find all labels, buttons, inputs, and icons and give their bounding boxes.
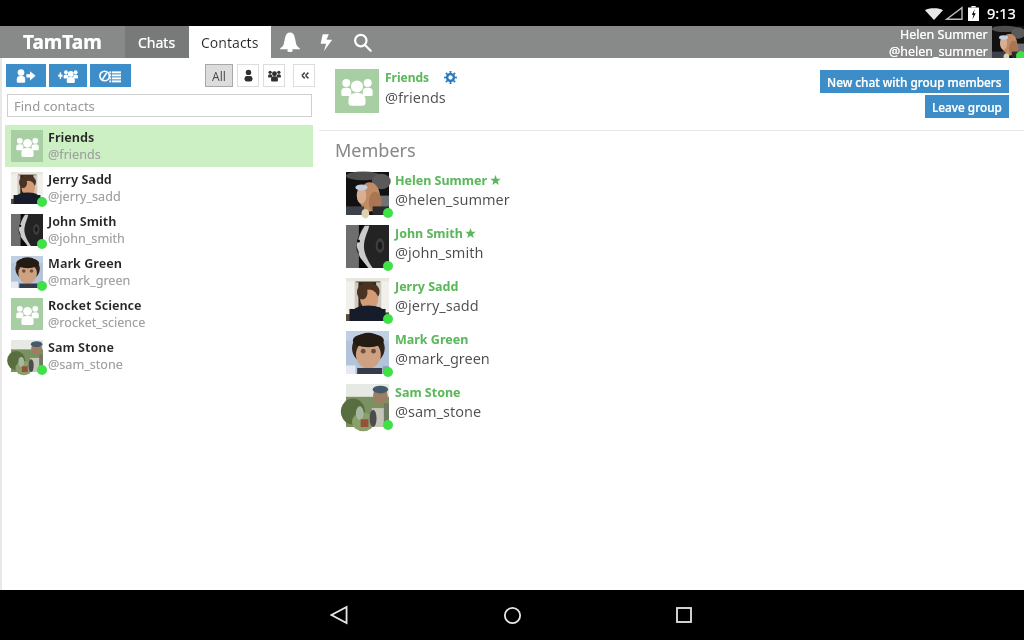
button[interactable]: John Smith [5, 209, 313, 251]
button[interactable]: Jerry Sadd [319, 276, 1024, 329]
button[interactable]: Sam Stone [319, 382, 1024, 435]
button[interactable]: Search [344, 26, 380, 58]
staticText: 9:13 [987, 3, 1016, 23]
staticText: Jerry Sadd [395, 278, 459, 295]
staticText: Sam Stone [395, 384, 461, 401]
button[interactable]: Friends [5, 125, 313, 167]
staticText: @rocket_science [48, 314, 146, 331]
staticText: @john_smith [48, 230, 125, 247]
button[interactable]: Find contacts [7, 94, 312, 117]
button[interactable]: Filter [293, 64, 315, 87]
staticText: Friends [48, 129, 95, 146]
staticText: Mark Green [48, 255, 122, 272]
staticText: Sam Stone [48, 339, 115, 356]
button[interactable]: Mark Green [319, 329, 1024, 382]
button[interactable]: Filter [237, 64, 259, 87]
staticText: Leave group [932, 99, 1002, 115]
staticText: TamTam [23, 29, 102, 55]
button[interactable]: Action [6, 64, 46, 87]
staticText: @helen_summer [889, 43, 988, 58]
button[interactable]: Action [49, 64, 87, 87]
button[interactable]: Mark Green [5, 251, 313, 293]
staticText: Mark Green [395, 331, 469, 348]
staticText: Contacts [201, 33, 259, 52]
button[interactable]: Contacts [189, 26, 271, 58]
button[interactable]: Jerry Sadd [5, 167, 313, 209]
staticText: John Smith [48, 213, 117, 230]
staticText: Helen Summer [900, 26, 988, 43]
button[interactable]: Rocket Science [5, 293, 313, 335]
button[interactable]: Home [492, 595, 532, 635]
button[interactable]: Sam Stone [5, 335, 313, 377]
button[interactable]: Action [90, 64, 131, 87]
staticText: Jerry Sadd [48, 171, 112, 188]
button[interactable]: Group settings [444, 71, 457, 84]
staticText: New chat with group members [827, 74, 1002, 90]
staticText: @jerry_sadd [48, 188, 121, 205]
staticText: @sam_stone [48, 356, 123, 373]
staticText: @mark_green [48, 272, 131, 289]
button[interactable]: TamTam [0, 26, 125, 58]
staticText: All [212, 68, 226, 84]
staticText: @friends [385, 87, 446, 107]
button[interactable]: Chats [125, 26, 189, 58]
staticText: Helen Summer [395, 172, 488, 189]
staticText: @john_smith [395, 242, 484, 262]
staticText: Members [335, 138, 416, 163]
button[interactable]: John Smith [319, 223, 1024, 276]
staticText: Chats [138, 33, 176, 52]
button[interactable]: New chat with group members [820, 70, 1009, 93]
button[interactable]: Helen Summer [319, 170, 1024, 223]
button[interactable]: All [205, 64, 233, 87]
staticText: Find contacts [14, 97, 95, 115]
button[interactable]: Leave group [925, 95, 1009, 118]
staticText: John Smith [395, 225, 463, 242]
staticText: @helen_summer [395, 189, 510, 209]
button[interactable]: Helen Summer [889, 26, 992, 58]
staticText: Rocket Science [48, 297, 142, 314]
button[interactable]: Filter [263, 64, 285, 87]
button[interactable]: Notifications [271, 26, 308, 58]
staticText: @friends [48, 146, 101, 163]
staticText: @mark_green [395, 348, 490, 368]
button[interactable]: Recents [664, 595, 704, 635]
staticText: Friends [385, 69, 430, 85]
staticText: @sam_stone [395, 401, 482, 421]
button[interactable]: Back [319, 595, 359, 635]
staticText: @jerry_sadd [395, 295, 479, 315]
button[interactable]: Activity [308, 26, 344, 58]
